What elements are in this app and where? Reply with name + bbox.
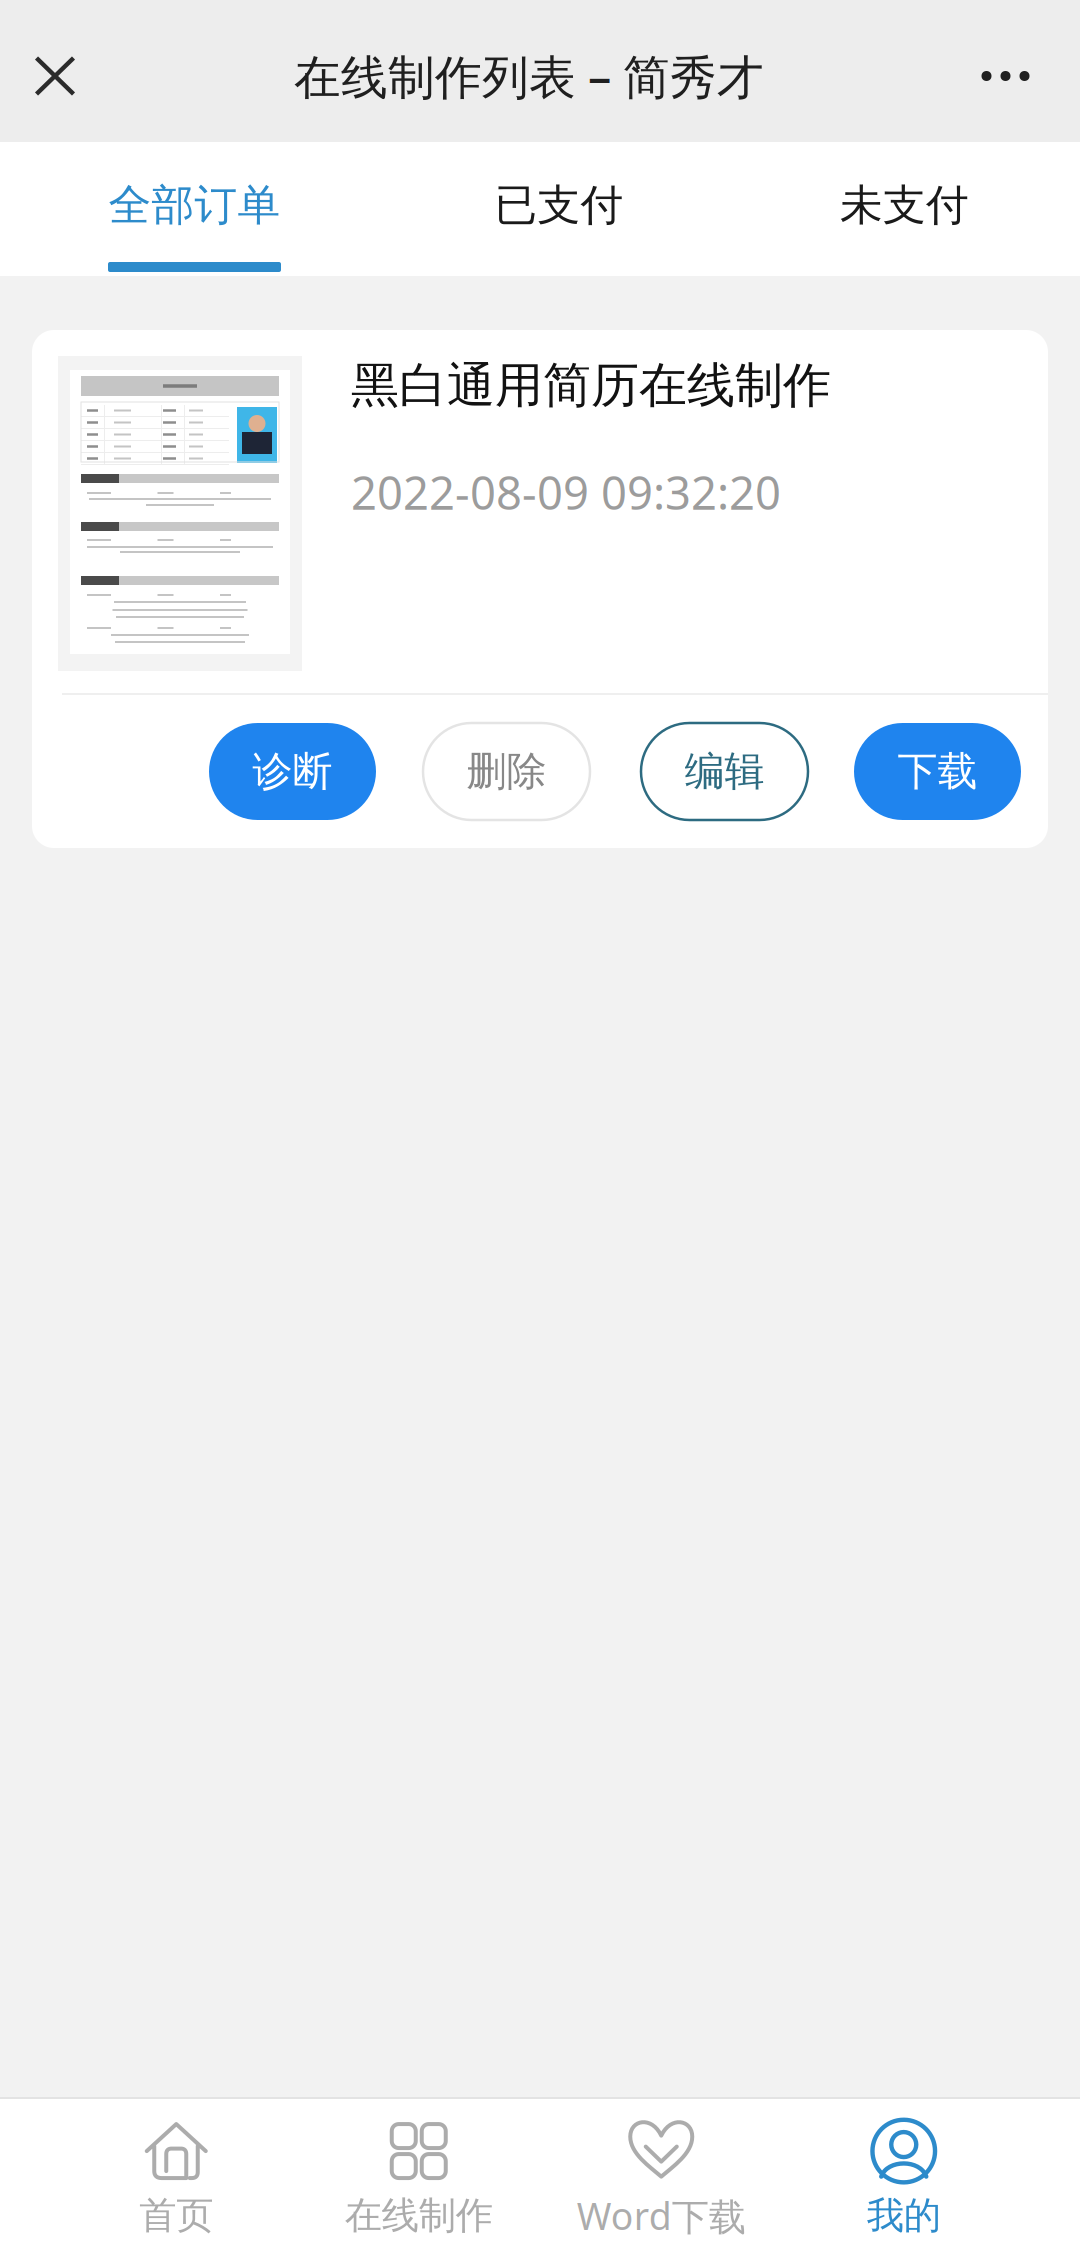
button[interactable]: Word下载 (540, 2098, 782, 2243)
button[interactable]: 已支付 (389, 142, 729, 276)
button[interactable]: 首页 (55, 2098, 297, 2243)
staticText: 已支付 (494, 179, 623, 231)
button[interactable]: 编辑 (641, 723, 808, 820)
button[interactable]: 在线制作 (297, 2098, 540, 2243)
button[interactable]: 下载 (854, 723, 1021, 820)
button[interactable]: 关闭 (0, 0, 110, 142)
button[interactable]: 我的 (782, 2098, 1025, 2243)
staticText: 全部订单 (108, 179, 280, 231)
staticText: 未支付 (840, 179, 969, 231)
staticText: 下载 (897, 747, 977, 796)
button[interactable]: 删除 (423, 723, 590, 820)
staticText: 首页 (139, 2193, 213, 2238)
staticText: 删除 (466, 747, 546, 796)
button[interactable]: 未支付 (729, 142, 1080, 276)
button[interactable]: 全部订单 (0, 142, 389, 276)
staticText: Word下载 (577, 2191, 746, 2240)
staticText: 2022-08-09 09:32:20 (351, 462, 781, 522)
staticText: 诊断 (252, 747, 332, 796)
staticText: 黑白通用简历在线制作 (351, 356, 831, 415)
button[interactable]: 诊断 (209, 723, 376, 820)
button[interactable]: 更多 (931, 0, 1080, 142)
staticText: 我的 (867, 2193, 941, 2238)
staticText: 在线制作 (345, 2193, 493, 2238)
staticText: 编辑 (684, 747, 764, 796)
staticText: 在线制作列表 – 简秀才 (294, 45, 764, 107)
